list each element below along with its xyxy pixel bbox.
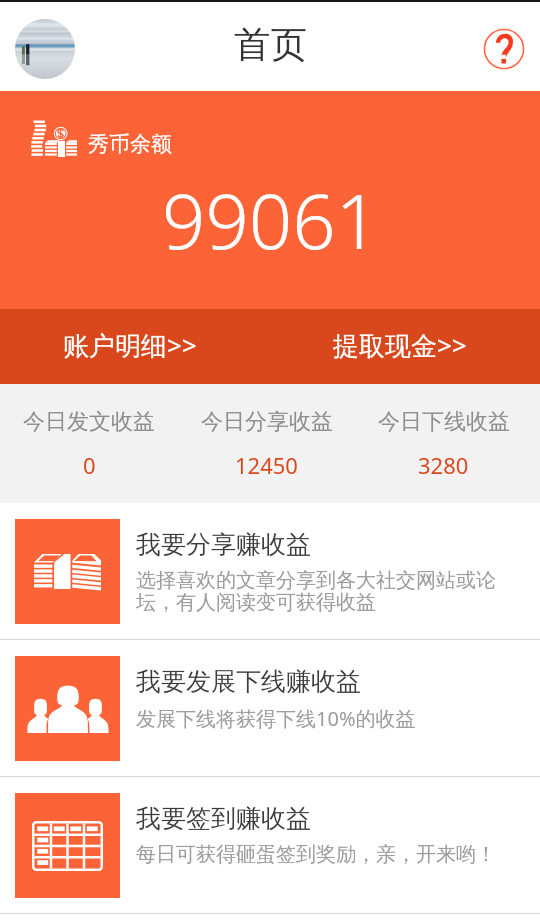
staticText: 提取现金>> (333, 327, 467, 363)
staticText: 3280 (418, 450, 469, 480)
button[interactable]: 我要发展下线赚收益 (0, 640, 540, 776)
button[interactable]: 提取现金>> (270, 309, 540, 384)
staticText: 秀币余额 (88, 131, 172, 157)
button[interactable]: 我要分享赚收益 (0, 503, 540, 639)
staticText: 账户明细>> (63, 327, 197, 363)
staticText: 我要发展下线赚收益 (136, 666, 361, 697)
staticText: 0 (83, 450, 96, 480)
staticText: 今日下线收益 (378, 408, 510, 436)
staticText: 我要分享赚收益 (136, 529, 311, 560)
button[interactable]: Help (481, 26, 527, 72)
staticText: 今日发文收益 (23, 408, 155, 436)
button[interactable]: 我要签到赚收益 (0, 777, 540, 913)
staticText: 12450 (235, 450, 298, 480)
staticText: 我要签到赚收益 (136, 803, 311, 834)
staticText: 发展下线将获得下线10%的收益 (136, 705, 416, 732)
button[interactable]: 账户明细>> (0, 309, 270, 384)
staticText: 首页 (234, 22, 307, 68)
button[interactable]: 今日下线收益 (355, 384, 532, 503)
button[interactable]: Profile (15, 19, 75, 79)
button[interactable]: 今日发文收益 (0, 384, 178, 503)
staticText: 每日可获得砸蛋签到奖励，亲，开来哟！ (136, 842, 496, 867)
staticText: 选择喜欢的文章分享到各大社交网站或论坛，有人阅读变可获得收益 (136, 568, 502, 615)
button[interactable]: 今日分享收益 (178, 384, 355, 503)
staticText: 99061 (162, 168, 379, 272)
staticText: 今日分享收益 (201, 408, 333, 436)
